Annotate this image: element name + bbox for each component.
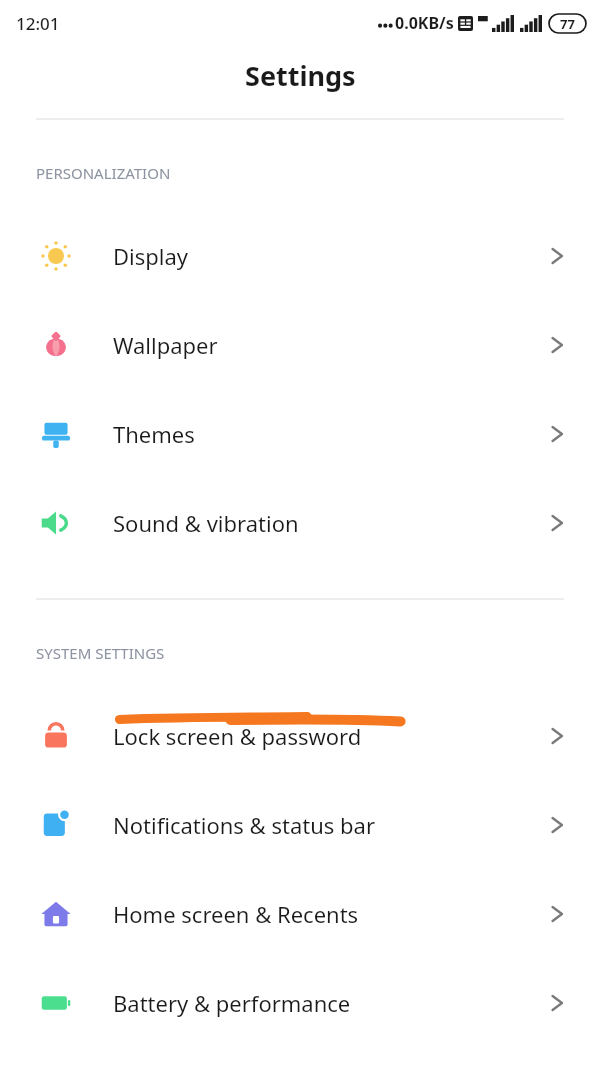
staticText: 77 xyxy=(560,15,575,33)
staticText: Wallpaper xyxy=(113,330,544,360)
staticText: 12:01 xyxy=(16,12,60,35)
button[interactable]: Notifications & status bar xyxy=(0,780,600,869)
button[interactable]: Lock screen & password xyxy=(0,691,600,780)
staticText: Display xyxy=(113,241,544,271)
staticText: Settings xyxy=(245,57,356,94)
staticText: Sound & vibration xyxy=(113,508,544,538)
staticText: Battery & performance xyxy=(113,988,544,1018)
button[interactable]: Wallpaper xyxy=(0,300,600,389)
staticText: PERSONALIZATION xyxy=(36,163,600,183)
staticText: Home screen & Recents xyxy=(113,899,544,929)
staticText: SYSTEM SETTINGS xyxy=(36,643,600,663)
button[interactable]: Home screen & Recents xyxy=(0,869,600,958)
button[interactable]: Battery & performance xyxy=(0,958,600,1047)
button[interactable]: Sound & vibration xyxy=(0,478,600,567)
staticText: Themes xyxy=(113,419,544,449)
staticText: Notifications & status bar xyxy=(113,810,544,840)
button[interactable]: Themes xyxy=(0,389,600,478)
button[interactable]: Display xyxy=(0,211,600,300)
staticText: 0.0KB/s xyxy=(395,12,454,34)
staticText: Lock screen & password xyxy=(113,721,544,751)
